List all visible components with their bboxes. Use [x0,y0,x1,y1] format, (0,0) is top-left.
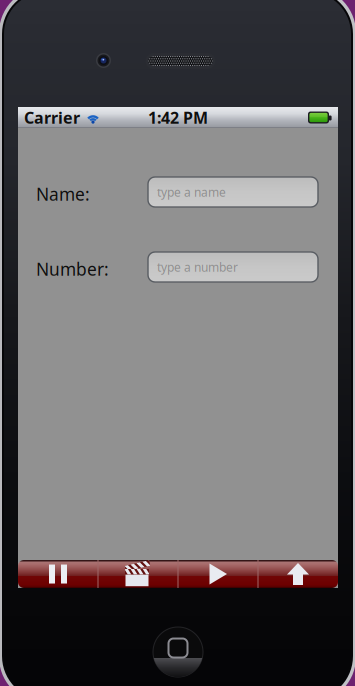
button[interactable]: Home [151,625,205,679]
staticText: type a number [157,259,238,275]
button[interactable]: Record [98,560,178,588]
button[interactable]: Upload [258,560,338,588]
button[interactable]: type a name [148,177,318,207]
button[interactable]: Pause [18,560,98,588]
button[interactable]: type a number [148,252,318,282]
staticText: type a name [157,184,226,200]
staticText: Name: [36,182,90,205]
button[interactable]: Play [178,560,258,588]
staticText: Number: [36,257,109,280]
staticText: Carrier [24,107,80,128]
staticText: 1:42 PM [148,107,208,128]
